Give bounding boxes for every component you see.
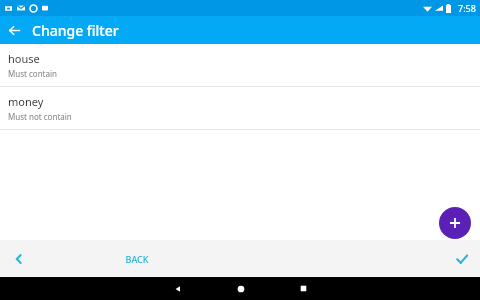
button[interactable]: Add filter <box>439 207 471 239</box>
button[interactable]: money <box>0 87 480 129</box>
button[interactable]: Back <box>0 16 28 44</box>
staticText: BACK <box>125 253 149 265</box>
staticText: Must not contain <box>8 111 72 122</box>
button[interactable]: Back <box>166 277 189 300</box>
staticText: money <box>8 94 44 109</box>
button[interactable]: BACK <box>113 244 161 274</box>
staticText: Change filter <box>32 21 119 40</box>
button[interactable]: Recent apps <box>292 277 315 300</box>
staticText: house <box>8 51 40 66</box>
button[interactable]: Previous <box>0 240 37 277</box>
button[interactable]: house <box>0 44 480 86</box>
staticText: 7:58 <box>458 2 476 14</box>
button[interactable]: Done <box>443 240 480 277</box>
button[interactable]: Home <box>229 277 252 300</box>
staticText: Must contain <box>8 68 58 79</box>
